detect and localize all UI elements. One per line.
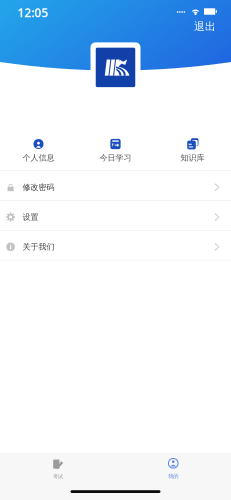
button[interactable]: 今日学习 [77,138,154,163]
button[interactable]: 退出 [188,18,222,34]
staticText: 12:05 [17,5,48,20]
staticText: 考试 [53,473,63,480]
button[interactable]: 个人信息 [0,138,77,163]
button[interactable]: 我的 [115,454,231,475]
staticText: 我的 [168,473,178,479]
staticText: 个人信息 [22,153,54,163]
staticText: 修改密码 [22,182,54,192]
staticText: 今日学习 [99,153,131,163]
button[interactable]: 关于我们 [0,231,231,260]
staticText: 知识库 [180,153,204,163]
button[interactable]: 考试 [0,454,115,475]
button[interactable]: 修改密码 [0,171,231,201]
button[interactable]: 知识库 [154,138,231,163]
staticText: 关于我们 [22,242,54,252]
staticText: 退出 [194,20,216,33]
staticText: 设置 [22,212,38,222]
button[interactable]: 设置 [0,201,231,231]
